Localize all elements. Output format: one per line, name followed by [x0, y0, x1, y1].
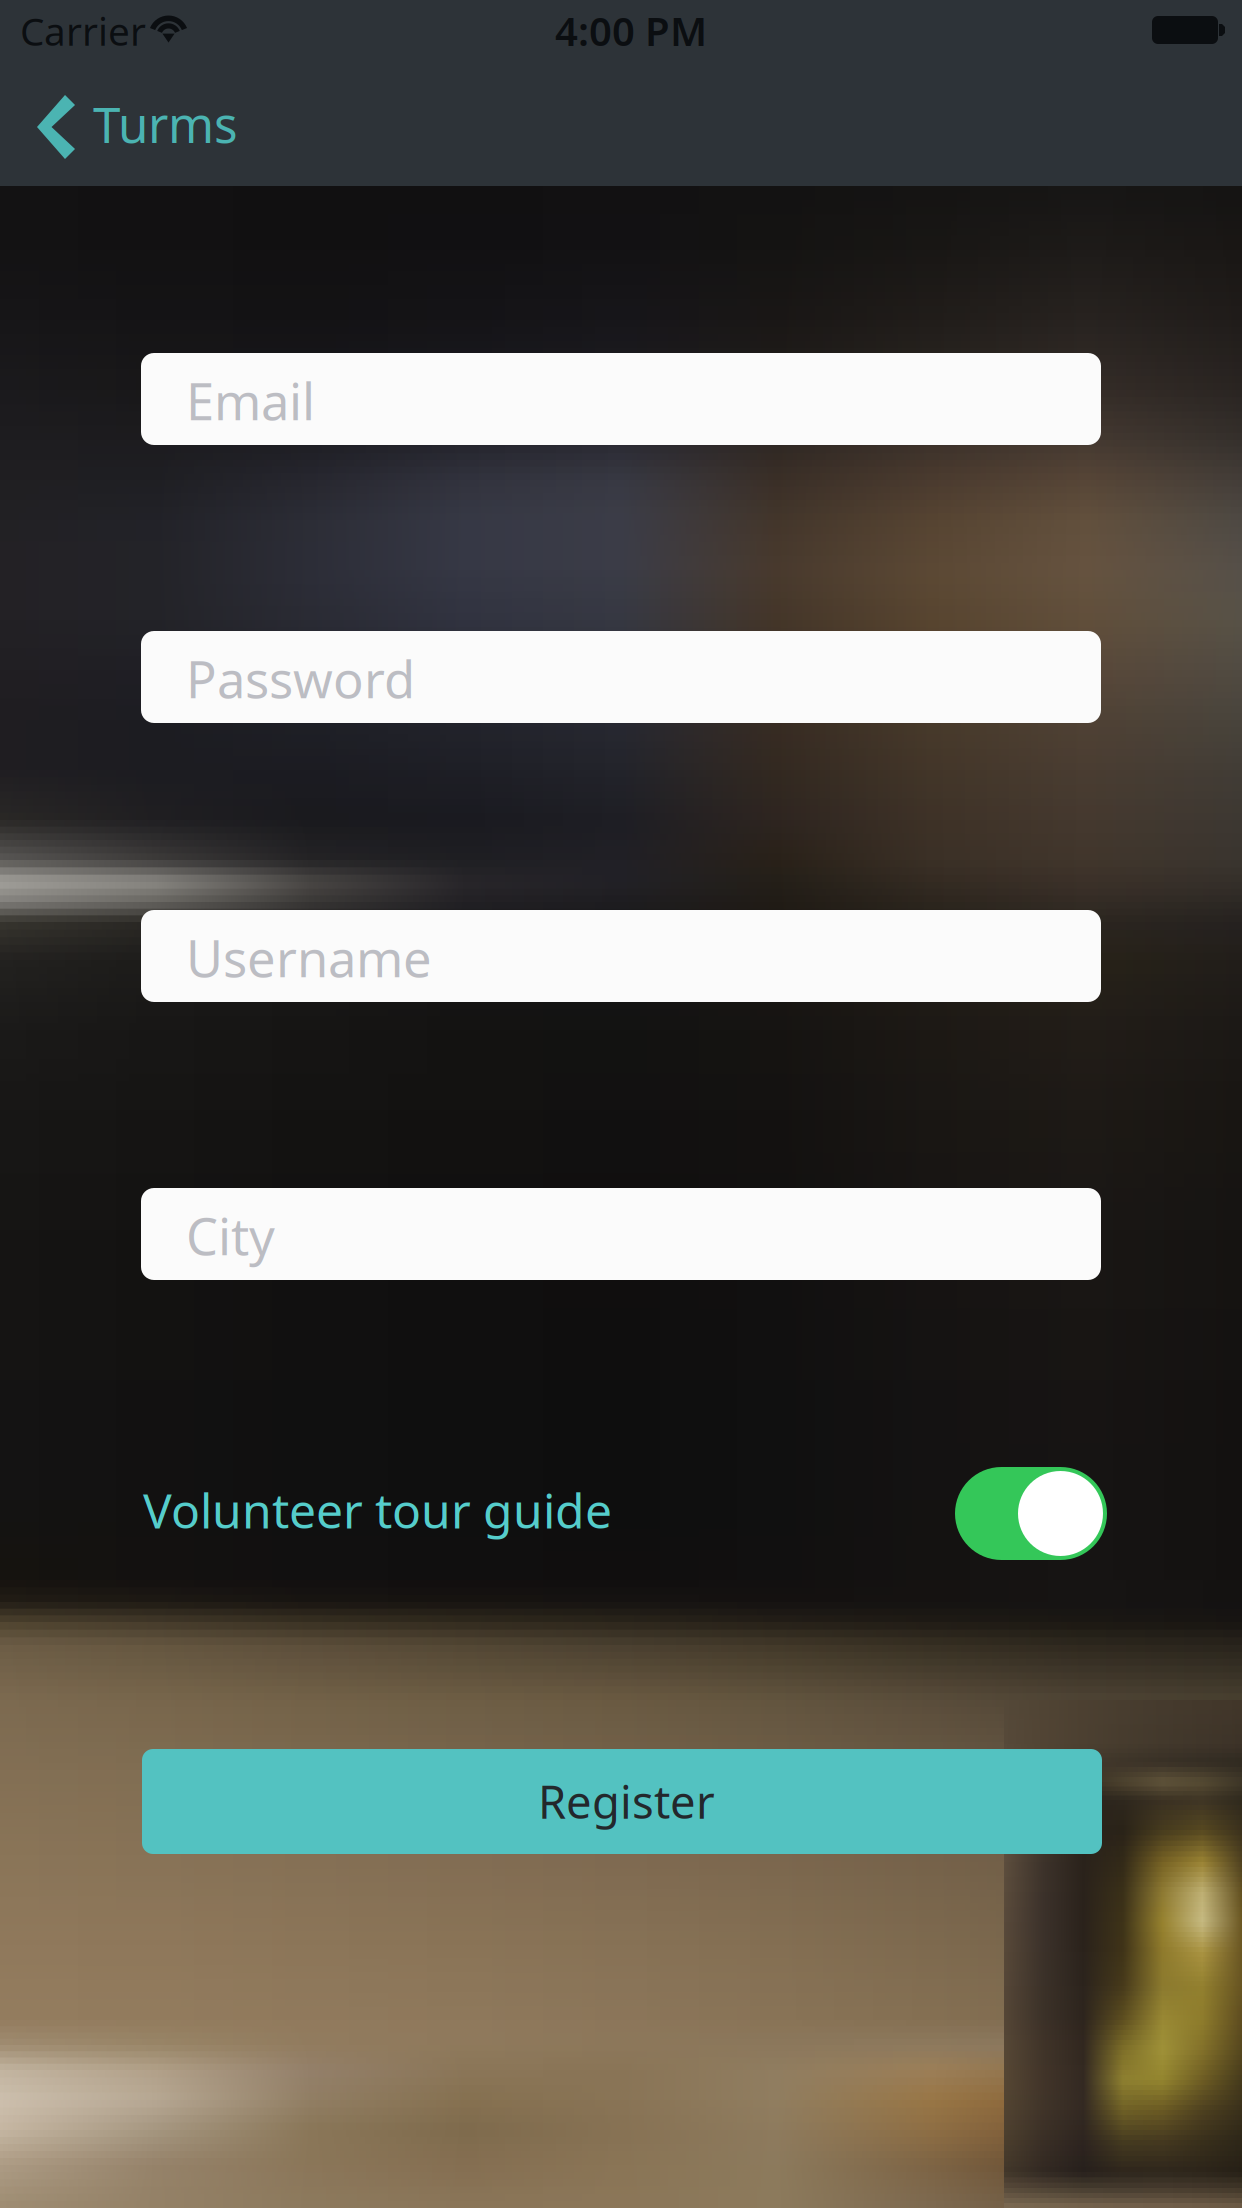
staticText: City [186, 1202, 275, 1269]
button[interactable]: Turms [0, 85, 300, 185]
button[interactable]: Volunteer tour guide [141, 1467, 1107, 1560]
staticText: Email [186, 367, 315, 434]
button[interactable]: Register [142, 1749, 1102, 1854]
staticText: Username [186, 924, 432, 991]
staticText: Register [538, 1771, 715, 1831]
staticText: Carrier [20, 5, 146, 56]
staticText: Password [186, 645, 415, 712]
staticText: Volunteer tour guide [143, 1478, 612, 1542]
staticText: Turms [93, 91, 238, 156]
staticText: 4:00 PM [555, 4, 707, 57]
